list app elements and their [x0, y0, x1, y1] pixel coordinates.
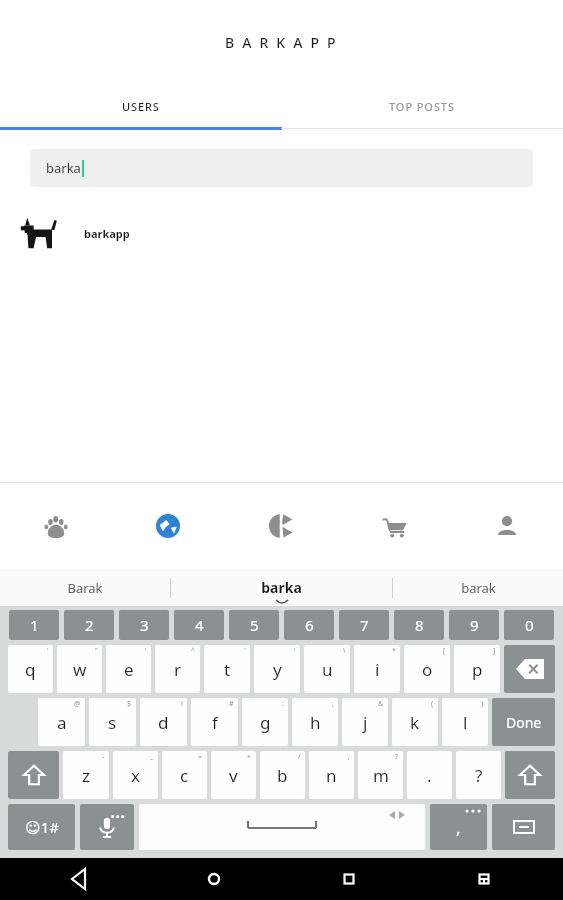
- button[interactable]: ,: [430, 804, 487, 850]
- staticText: 6: [305, 615, 314, 635]
- button[interactable]: m: [358, 751, 403, 799]
- button[interactable]: Back: [62, 862, 96, 896]
- button[interactable]: v: [211, 751, 256, 799]
- staticText: -: [102, 752, 105, 762]
- staticText: !: [181, 699, 183, 709]
- button[interactable]: 1: [9, 610, 59, 640]
- staticText: ?: [395, 752, 399, 762]
- button[interactable]: h: [292, 698, 338, 746]
- staticText: p: [472, 658, 483, 681]
- staticText: r: [174, 658, 182, 681]
- staticText: 2: [85, 615, 94, 635]
- button[interactable]: i: [354, 645, 400, 693]
- button[interactable]: f: [191, 698, 238, 746]
- staticText: z: [82, 764, 90, 787]
- button[interactable]: barkapp: [0, 210, 563, 256]
- button[interactable]: y: [254, 645, 300, 693]
- staticText: .: [427, 764, 432, 787]
- staticText: [: [443, 646, 446, 656]
- button[interactable]: Profile: [450, 483, 563, 569]
- button[interactable]: e: [106, 645, 151, 693]
- button[interactable]: Pets: [0, 483, 112, 569]
- staticText: ): [481, 699, 484, 709]
- button[interactable]: Home: [197, 862, 231, 896]
- button[interactable]: ☺1#: [8, 804, 75, 850]
- staticText: n: [326, 764, 337, 787]
- button[interactable]: o: [404, 645, 450, 693]
- staticText: o: [422, 658, 433, 681]
- button[interactable]: n: [309, 751, 354, 799]
- staticText: $: [127, 699, 132, 709]
- button[interactable]: barka: [171, 569, 392, 606]
- button[interactable]: Split screen: [467, 862, 501, 896]
- button[interactable]: d: [140, 698, 187, 746]
- button[interactable]: 5: [229, 610, 279, 640]
- staticText: 4: [195, 615, 204, 635]
- button[interactable]: Backspace: [504, 645, 555, 693]
- button[interactable]: Space: [139, 804, 425, 850]
- staticText: h: [310, 711, 321, 734]
- button[interactable]: 4: [174, 610, 224, 640]
- button[interactable]: Switch keyboard: [492, 804, 555, 850]
- button[interactable]: k: [392, 698, 438, 746]
- staticText: ': [145, 646, 147, 656]
- button[interactable]: x: [113, 751, 158, 799]
- button[interactable]: 9: [449, 610, 499, 640]
- button[interactable]: barka: [30, 149, 533, 187]
- button[interactable]: ?: [456, 751, 501, 799]
- button[interactable]: Recents: [332, 862, 366, 896]
- button[interactable]: 3: [119, 610, 169, 640]
- button[interactable]: 7: [339, 610, 389, 640]
- button[interactable]: Barak: [0, 569, 170, 606]
- button[interactable]: TOP POSTS: [281, 85, 563, 127]
- button[interactable]: 6: [284, 610, 334, 640]
- button[interactable]: Done: [492, 698, 555, 746]
- staticText: a: [57, 711, 67, 734]
- staticText: k: [410, 711, 420, 734]
- button[interactable]: q: [8, 645, 53, 693]
- staticText: i: [375, 658, 380, 681]
- staticText: +: [247, 752, 252, 762]
- button[interactable]: Explore: [112, 483, 224, 569]
- staticText: `: [244, 646, 246, 656]
- button[interactable]: barak: [393, 569, 563, 606]
- button[interactable]: Shift: [8, 751, 59, 799]
- staticText: q: [25, 658, 36, 681]
- button[interactable]: Voice input: [80, 804, 134, 850]
- button[interactable]: w: [57, 645, 102, 693]
- button[interactable]: t: [204, 645, 250, 693]
- staticText: t: [224, 658, 231, 681]
- button[interactable]: l: [442, 698, 488, 746]
- button[interactable]: .: [407, 751, 452, 799]
- button[interactable]: 8: [394, 610, 444, 640]
- button[interactable]: u: [304, 645, 350, 693]
- button[interactable]: g: [242, 698, 288, 746]
- button[interactable]: s: [89, 698, 136, 746]
- button[interactable]: c: [162, 751, 207, 799]
- staticText: =: [198, 752, 203, 762]
- staticText: ,: [456, 816, 461, 839]
- button[interactable]: Camera: [224, 483, 337, 569]
- button[interactable]: p: [454, 645, 500, 693]
- staticText: barkapp: [84, 226, 130, 241]
- staticText: ☺1#: [25, 817, 59, 837]
- staticText: 8: [415, 615, 424, 635]
- staticText: 9: [470, 615, 479, 635]
- button[interactable]: j: [342, 698, 388, 746]
- button[interactable]: z: [63, 751, 109, 799]
- button[interactable]: Shop: [337, 483, 450, 569]
- button[interactable]: USERS: [0, 85, 281, 127]
- staticText: j: [363, 711, 368, 734]
- staticText: l: [463, 711, 468, 734]
- staticText: y: [273, 658, 282, 681]
- button[interactable]: 2: [64, 610, 114, 640]
- button[interactable]: r: [155, 645, 200, 693]
- staticText: ]: [493, 646, 496, 656]
- staticText: 3: [140, 615, 149, 635]
- staticText: #: [229, 699, 234, 709]
- staticText: USERS: [122, 99, 160, 114]
- button[interactable]: Shift: [505, 751, 555, 799]
- button[interactable]: b: [260, 751, 305, 799]
- button[interactable]: a: [38, 698, 85, 746]
- button[interactable]: 0: [504, 610, 554, 640]
